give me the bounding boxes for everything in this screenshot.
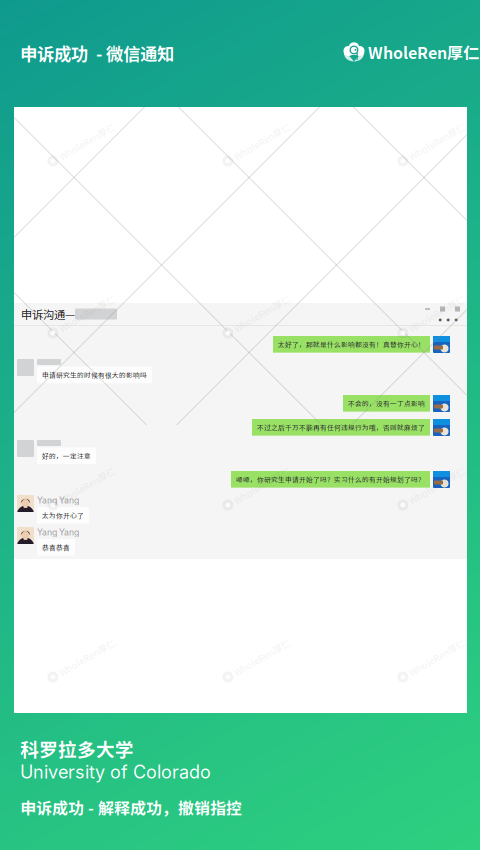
staticText: WholeRen厚仁: [406, 138, 469, 151]
staticText: 太为你开心了: [42, 510, 84, 520]
staticText: WholeRen厚仁: [231, 310, 294, 323]
staticText: WholeRen厚仁: [56, 138, 119, 151]
staticText: WholeRen厚仁: [231, 482, 294, 495]
staticText: WholeRen厚仁: [406, 482, 469, 495]
staticText: 申诉沟通—: [21, 306, 75, 322]
staticText: WholeRen厚仁: [56, 310, 119, 323]
staticText: 太好了，那就是什么影响都没有！真替你开心！: [278, 339, 425, 349]
staticText: Yang Yang: [37, 495, 79, 505]
staticText: 申请研究生的时候有很大的影响吗: [42, 370, 147, 380]
staticText: 申诉成功 - 解释成功，撤销指控: [20, 796, 242, 819]
staticText: 申诉成功 - 微信通知: [20, 40, 174, 66]
staticText: 恭喜恭喜: [42, 542, 70, 552]
staticText: 不过之后千万不能再有任何违规行为哦，否则就麻烦了: [257, 422, 425, 432]
staticText: WholeRen厚仁: [406, 654, 469, 667]
staticText: University of Colorado: [20, 761, 211, 783]
staticText: 好的，一定注意: [42, 451, 91, 461]
staticText: Yang Yang: [37, 527, 79, 537]
staticText: 不会的，没有一丁点影响: [348, 398, 425, 408]
staticText: 嗯嗯，你研究生申请开始了吗？实习什么的有开始规划了吗？: [236, 474, 425, 484]
staticText: 科罗拉多大学: [20, 735, 134, 762]
staticText: WholeRen厚仁: [368, 40, 479, 64]
staticText: • • •: [437, 313, 458, 325]
staticText: WholeRen厚仁: [406, 310, 469, 323]
staticText: WholeRen厚仁: [231, 138, 294, 151]
